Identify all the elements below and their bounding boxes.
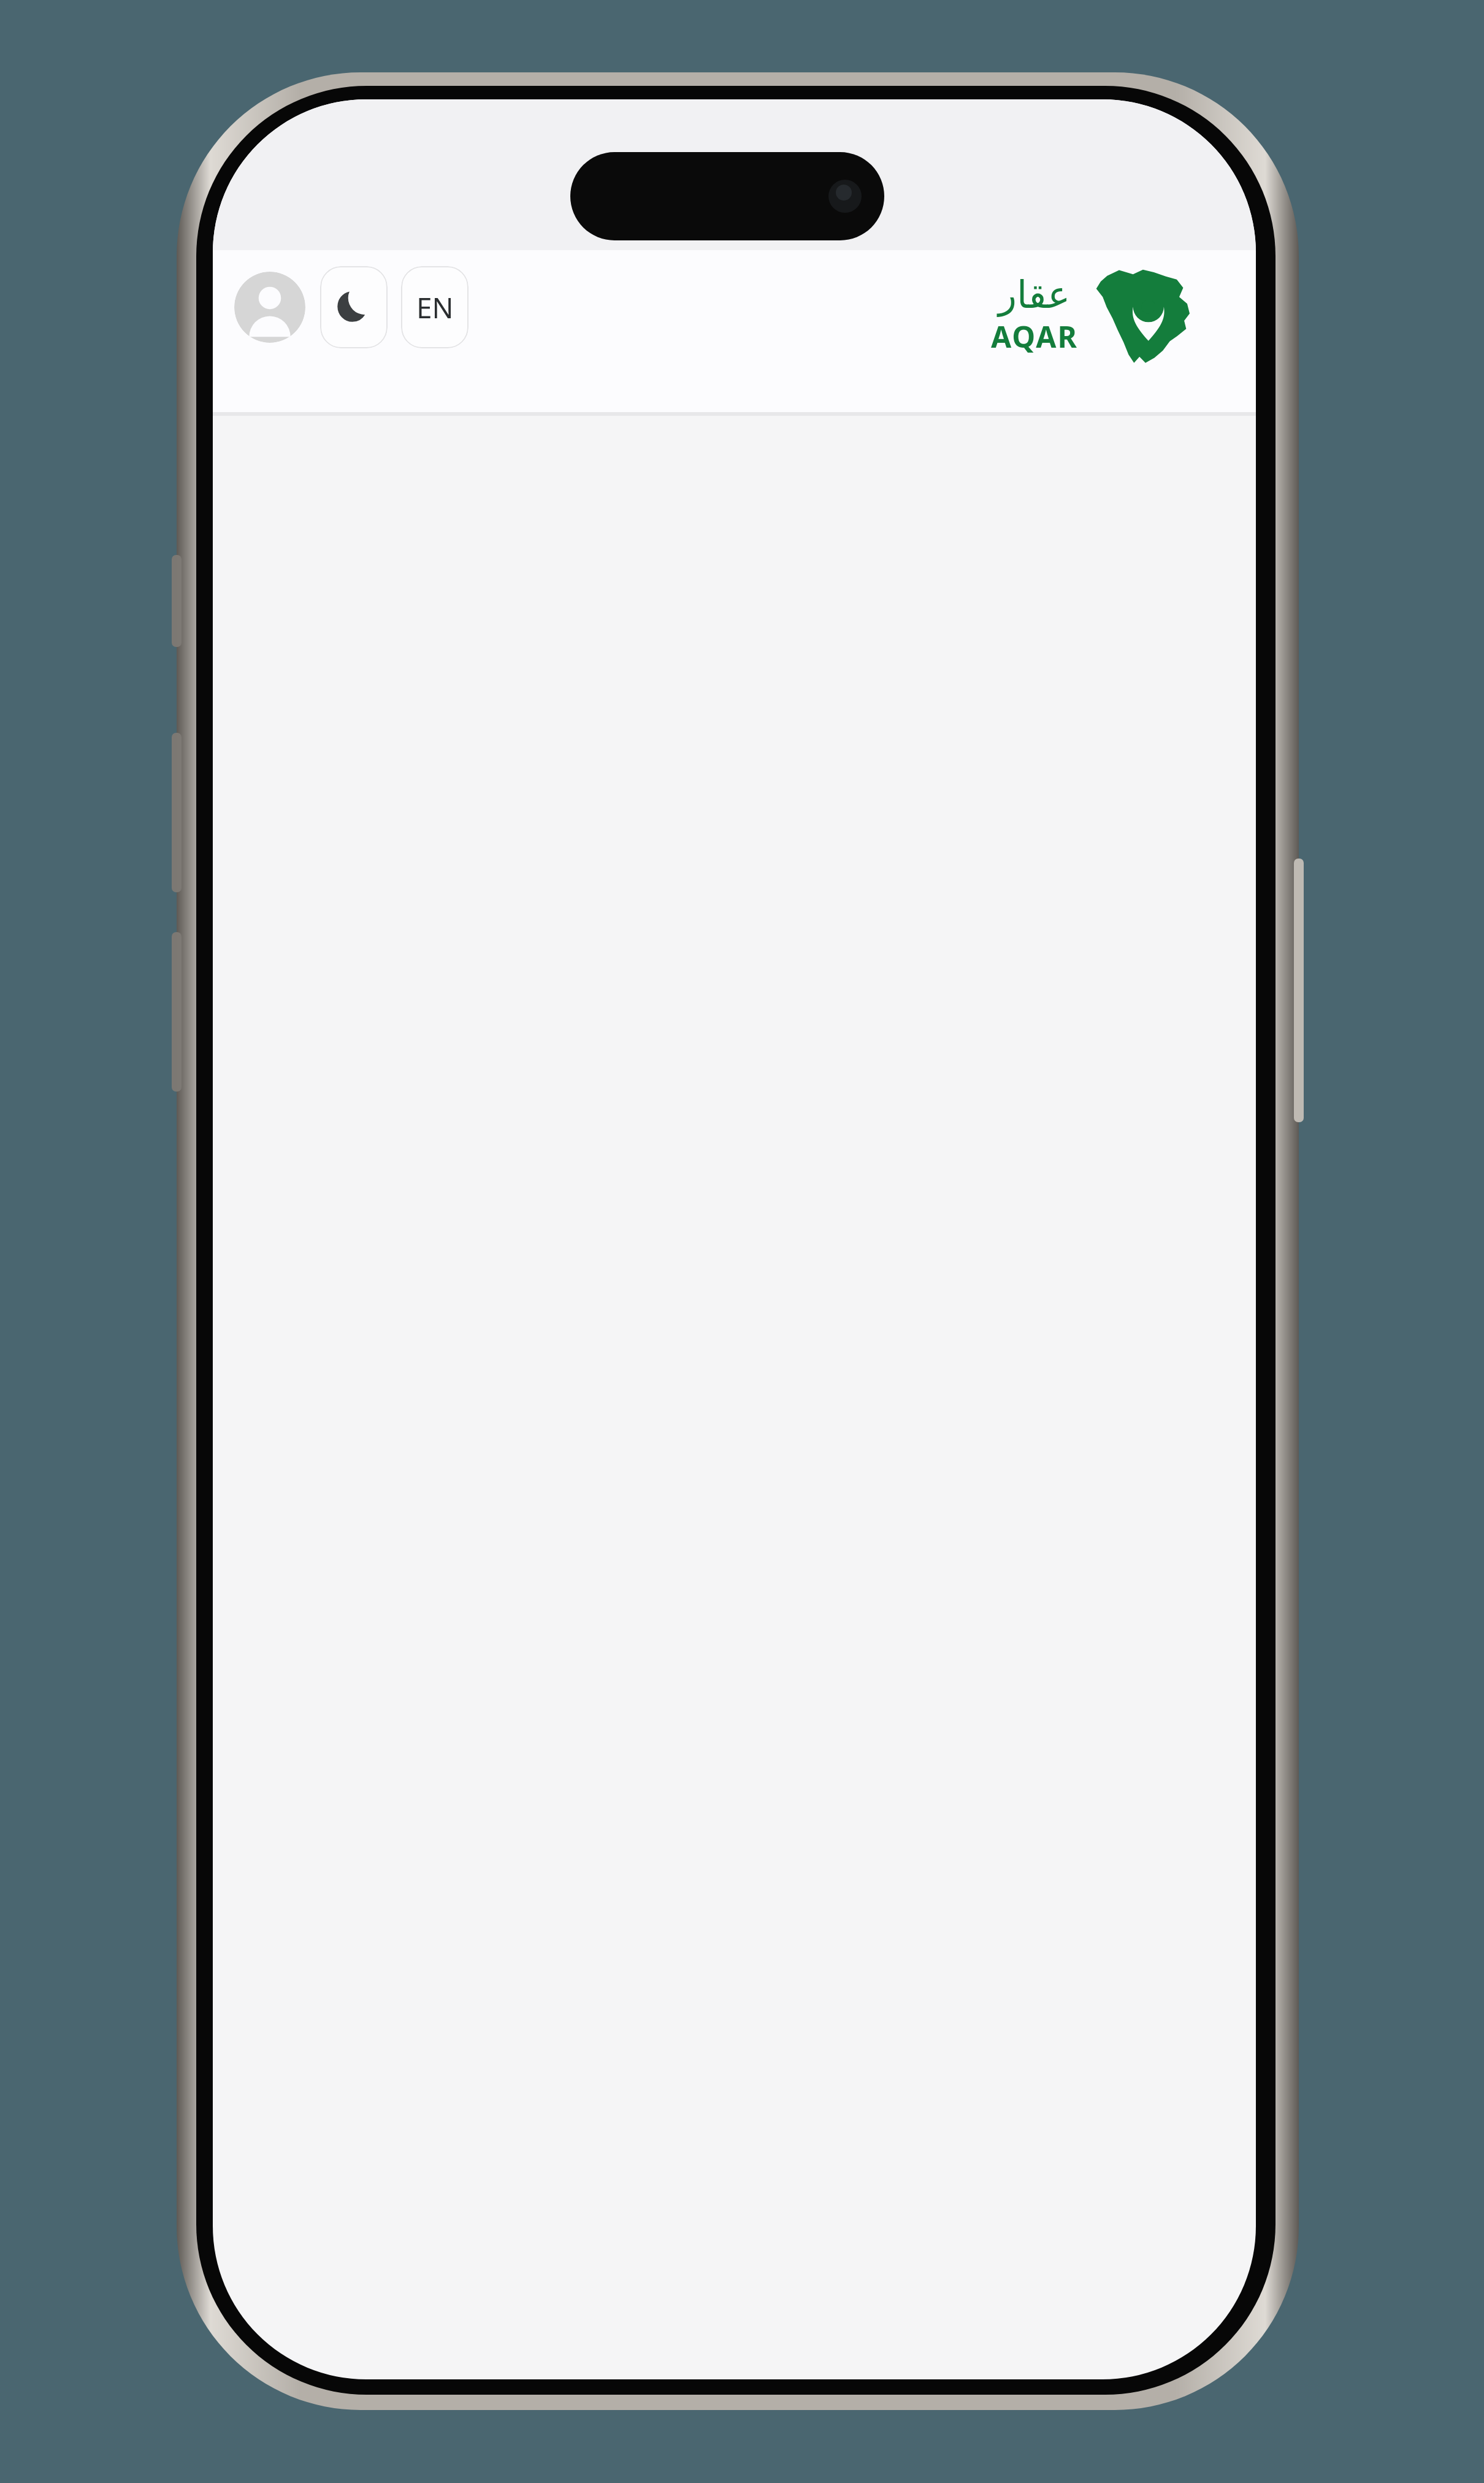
staticText: عقار bbox=[998, 272, 1071, 316]
button[interactable]: Aqar home bbox=[991, 262, 1190, 365]
staticText: AQAR bbox=[991, 316, 1078, 356]
button[interactable]: EN bbox=[401, 266, 469, 348]
staticText: EN bbox=[416, 288, 454, 327]
button[interactable]: Toggle dark mode bbox=[320, 266, 388, 348]
button[interactable]: Account bbox=[234, 272, 305, 343]
